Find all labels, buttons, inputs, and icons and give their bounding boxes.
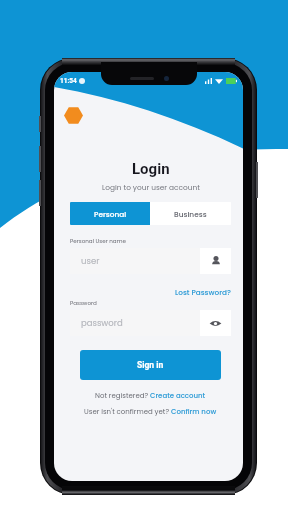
button[interactable]: password <box>70 310 231 336</box>
staticText: User isn't confirmed yet? <box>84 407 171 417</box>
staticText: Login <box>132 160 170 178</box>
staticText: 11:54 <box>60 77 77 85</box>
staticText: Business <box>174 209 207 219</box>
button[interactable]: Confirm now <box>171 407 217 417</box>
staticText: Personal User name <box>70 237 126 245</box>
staticText: Sign in <box>137 360 164 370</box>
button[interactable]: user <box>70 248 231 274</box>
staticText: Not registered? <box>95 391 150 401</box>
button[interactable]: Personal <box>70 202 150 225</box>
button[interactable]: Sign in <box>80 350 221 380</box>
button[interactable]: Create account <box>150 391 206 401</box>
staticText: password <box>81 317 123 329</box>
button[interactable]: Lost Password? <box>175 287 231 297</box>
staticText: Login to your user account <box>102 182 200 192</box>
other: User <box>210 255 222 267</box>
button[interactable]: Business <box>150 202 231 225</box>
staticText: Personal <box>94 209 127 219</box>
other: Show password <box>209 317 222 330</box>
staticText: user <box>81 255 100 267</box>
staticText: Password <box>70 299 97 307</box>
